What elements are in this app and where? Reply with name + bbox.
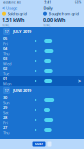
staticText: >: [78, 77, 81, 85]
staticText: 04: [3, 46, 7, 51]
staticText: TOTAL: [2, 23, 9, 27]
staticText: 30: [3, 95, 7, 100]
staticText: Sun: [3, 100, 9, 105]
staticText: 27: [3, 125, 7, 130]
staticText: 28: [3, 115, 7, 120]
staticText: 17: [4, 29, 8, 34]
staticText: Wed: [3, 61, 11, 66]
staticText: Thu: [3, 130, 9, 135]
button[interactable]: Options: [47, 141, 51, 146]
staticText: Bought from grid: [48, 11, 78, 16]
button[interactable]: <: [2, 4, 17, 12]
staticText: JULY 2019: [13, 29, 31, 34]
staticText: vodafone AU: [3, 1, 21, 4]
staticText: 9:41: [44, 1, 51, 4]
staticText: Mon: [3, 81, 11, 86]
staticText: Fri: [3, 41, 8, 46]
staticText: Usage: [6, 5, 17, 11]
staticText: Tue: [3, 71, 9, 76]
staticText: TOTAL: [43, 23, 50, 27]
staticText: JUNE 2019: [13, 88, 31, 93]
staticText: 03: [3, 56, 7, 61]
staticText: 0.00 kWh: [43, 16, 65, 23]
button[interactable]: TODAY: [32, 141, 45, 146]
staticText: Fri: [3, 120, 8, 125]
staticText: 02: [3, 66, 7, 71]
staticText: Thu: [3, 51, 9, 56]
staticText: Daily: [43, 5, 52, 11]
staticText: 17: [4, 88, 8, 93]
staticText: TODAY: [34, 142, 43, 146]
staticText: 1.51 kWh: [2, 16, 24, 23]
staticText: Sold to grid: [7, 11, 26, 16]
staticText: 05: [3, 36, 7, 41]
staticText: 01: [3, 76, 7, 81]
staticText: 68%: [75, 1, 81, 4]
staticText: 29: [3, 105, 7, 110]
staticText: Sat: [3, 110, 8, 115]
staticText: <: [2, 4, 5, 12]
